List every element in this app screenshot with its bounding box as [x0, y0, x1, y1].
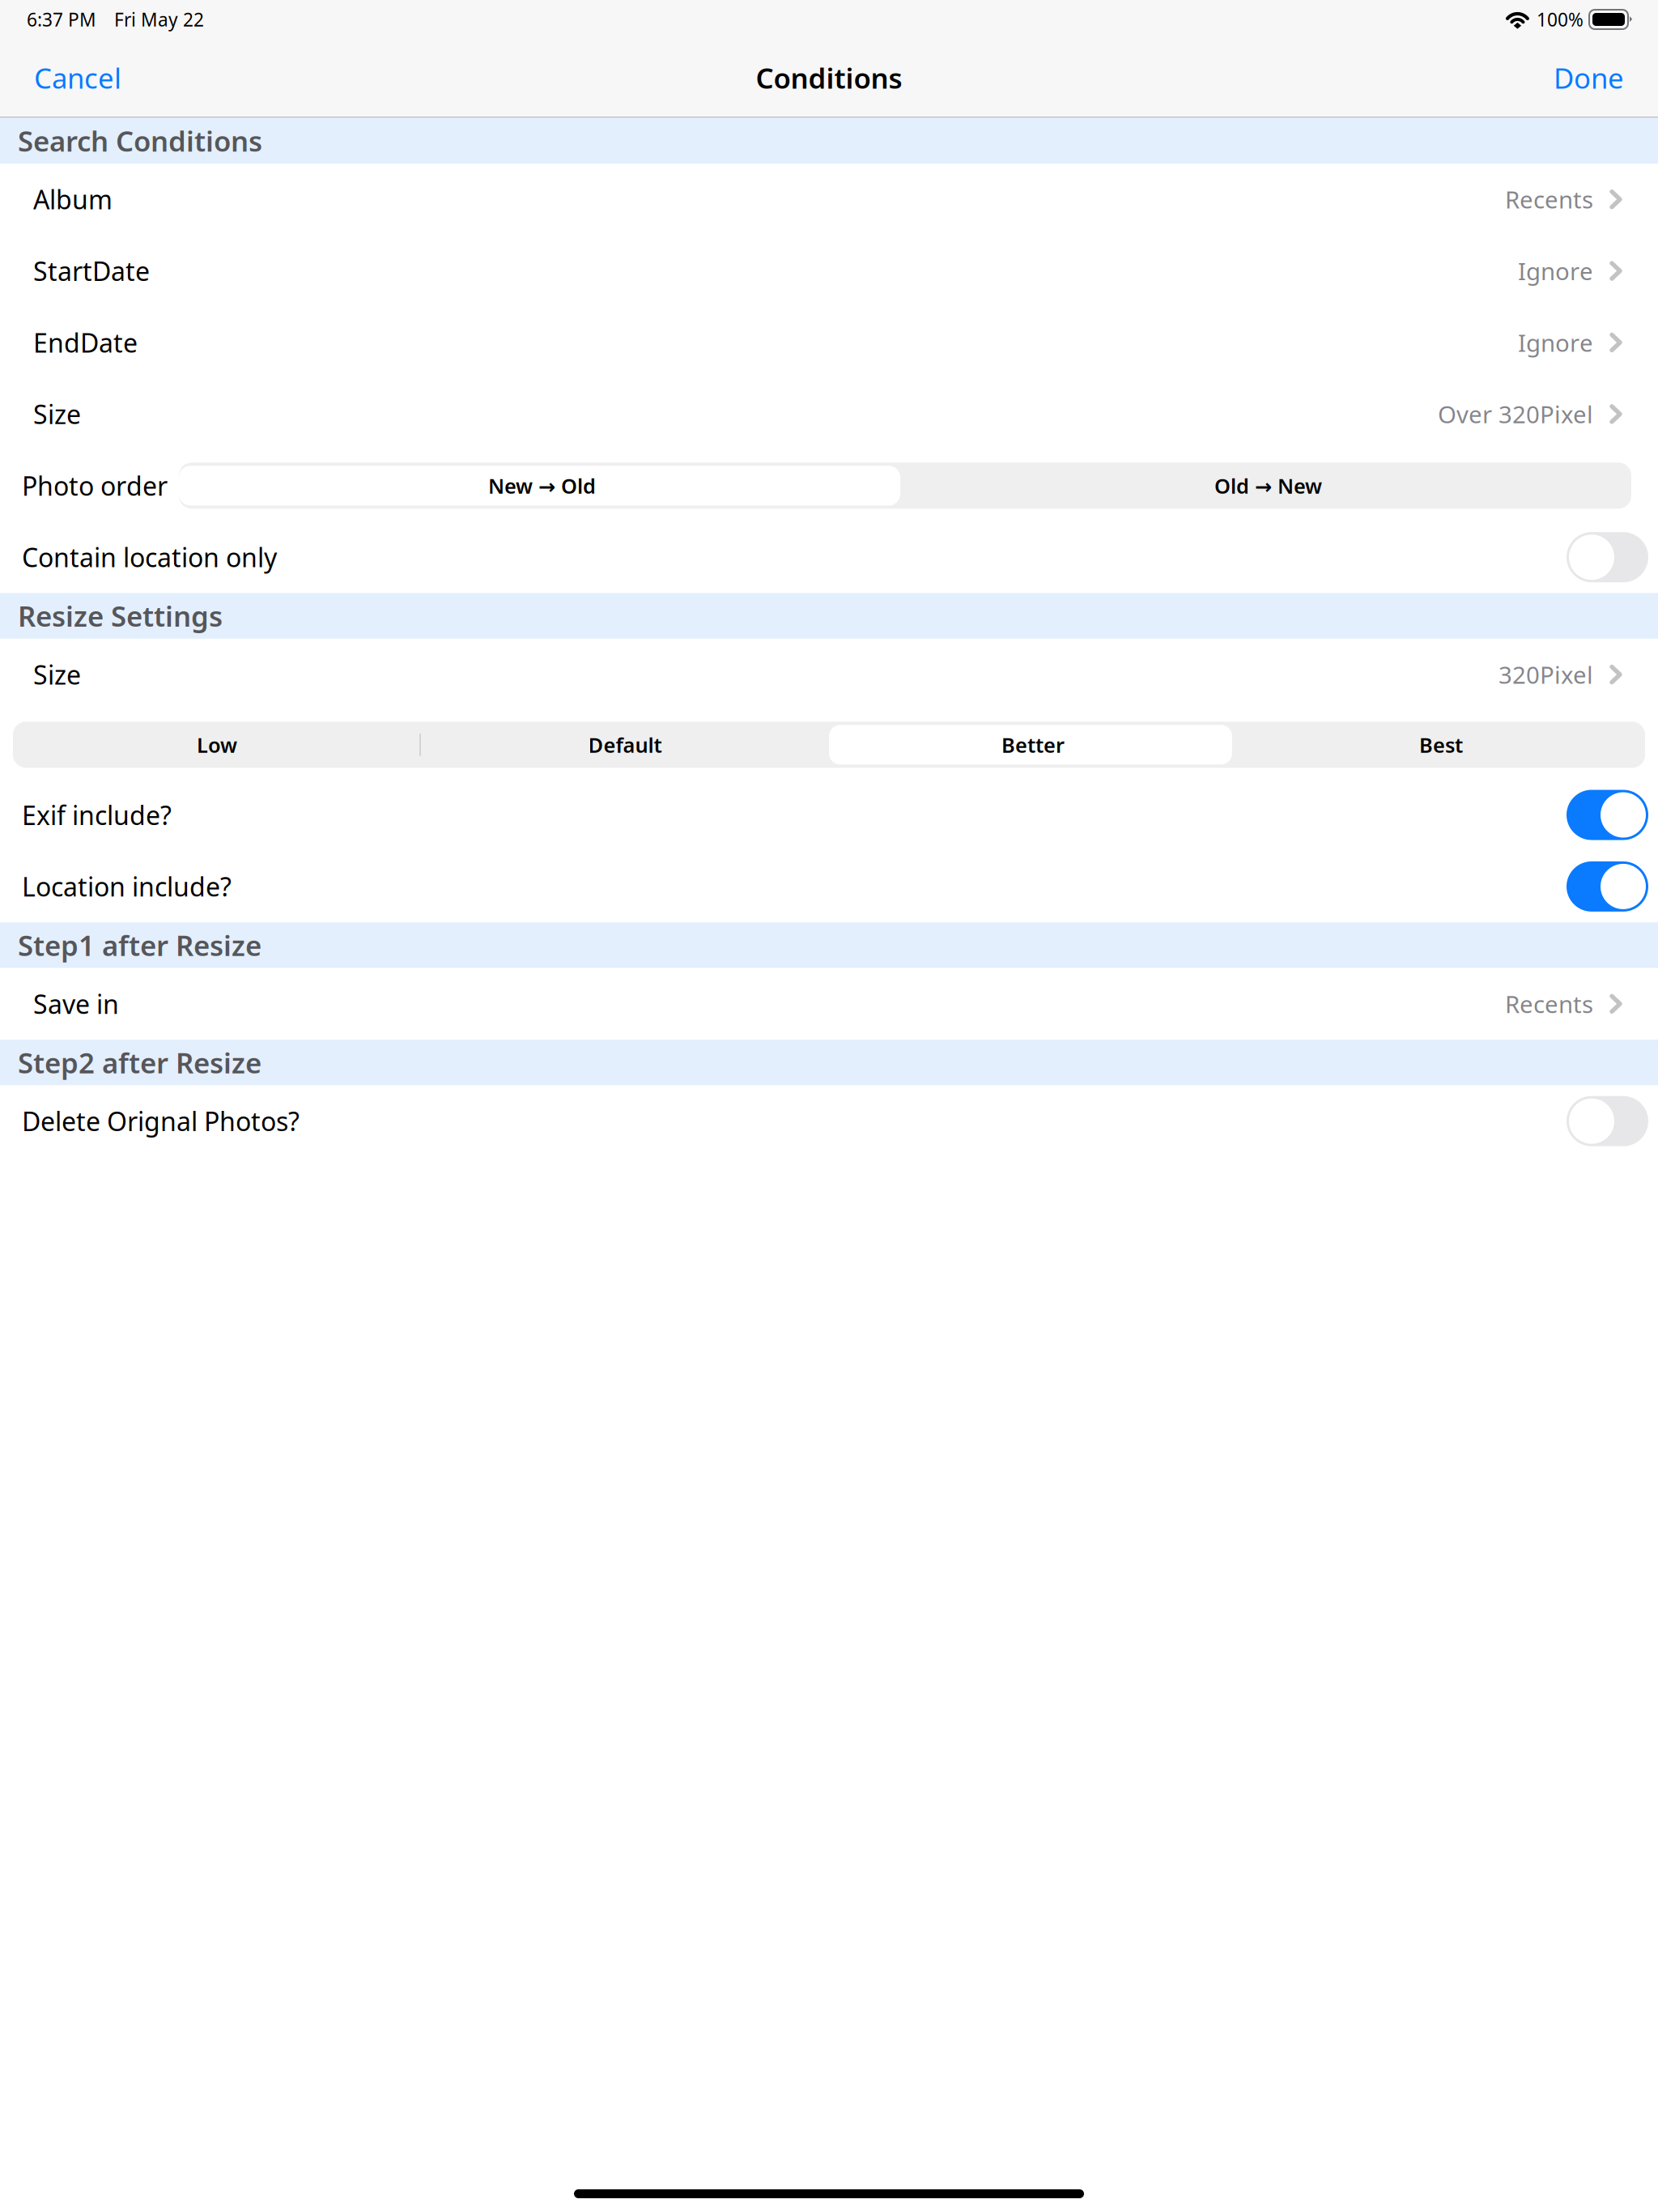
staticText: Best: [1419, 731, 1463, 758]
button[interactable]: Delete Orignal Photos?: [1567, 1096, 1648, 1146]
button[interactable]: Location include?: [1567, 861, 1648, 912]
button[interactable]: Size: [0, 639, 1658, 710]
staticText: 320Pixel: [1499, 659, 1593, 690]
staticText: Size: [33, 657, 81, 692]
staticText: Save in: [33, 987, 119, 1021]
staticText: Recents: [1505, 184, 1593, 215]
staticText: Ignore: [1518, 255, 1593, 287]
staticText: Conditions: [756, 59, 902, 96]
staticText: Step1 after Resize: [18, 926, 261, 964]
button[interactable]: Cancel: [28, 46, 128, 109]
button[interactable]: Best: [1237, 722, 1645, 768]
button[interactable]: Low: [13, 722, 421, 768]
button[interactable]: New → Old: [179, 463, 905, 509]
button[interactable]: Size: [0, 378, 1658, 450]
staticText: Contain location only: [22, 540, 277, 574]
staticText: Over 320Pixel: [1438, 398, 1593, 430]
staticText: Ignore: [1518, 327, 1593, 358]
staticText: Done: [1554, 59, 1624, 96]
staticText: Recents: [1505, 988, 1593, 1020]
button[interactable]: Contain location only: [1567, 532, 1648, 582]
button[interactable]: Save in: [0, 968, 1658, 1040]
staticText: Search Conditions: [18, 122, 262, 159]
staticText: 6:37 PM: [27, 7, 96, 32]
staticText: New → Old: [488, 472, 596, 499]
button[interactable]: Default: [421, 722, 829, 768]
staticText: Better: [1001, 731, 1065, 758]
button[interactable]: StartDate: [0, 235, 1658, 307]
button[interactable]: Exif include?: [1567, 790, 1648, 840]
staticText: Old → New: [1214, 472, 1322, 499]
staticText: Location include?: [22, 869, 232, 904]
staticText: Album: [33, 182, 113, 217]
staticText: 100%: [1537, 7, 1584, 32]
staticText: Photo order: [22, 468, 168, 503]
button[interactable]: Old → New: [905, 463, 1631, 509]
staticText: Step2 after Resize: [18, 1044, 261, 1081]
button[interactable]: Better: [829, 722, 1237, 768]
button[interactable]: EndDate: [0, 307, 1658, 378]
staticText: Low: [197, 731, 237, 758]
staticText: EndDate: [33, 325, 138, 360]
staticText: Resize Settings: [18, 597, 223, 634]
staticText: Cancel: [34, 59, 121, 96]
button[interactable]: Album: [0, 164, 1658, 235]
button[interactable]: Done: [1547, 46, 1630, 109]
staticText: Default: [588, 731, 662, 758]
staticText: Delete Orignal Photos?: [22, 1104, 300, 1138]
staticText: StartDate: [33, 254, 150, 288]
staticText: Size: [33, 397, 81, 431]
staticText: Fri May 22: [114, 7, 204, 32]
staticText: Exif include?: [22, 798, 172, 832]
